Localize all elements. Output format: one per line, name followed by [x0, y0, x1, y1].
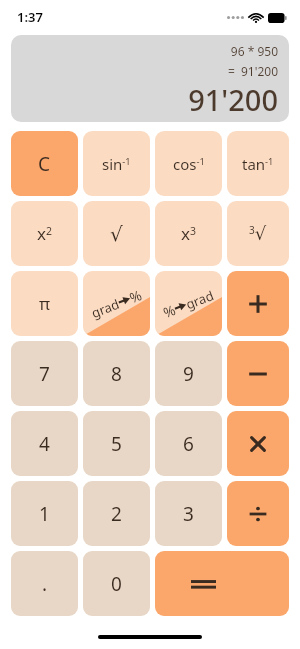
staticText: 5 — [111, 431, 122, 457]
button[interactable]: π — [11, 271, 78, 336]
button[interactable]: . — [11, 551, 78, 616]
button[interactable]: 5 — [83, 411, 150, 476]
button[interactable]: 0 — [83, 551, 150, 616]
button[interactable]: 3√ — [227, 201, 289, 266]
button[interactable]: tan-1 — [227, 131, 289, 196]
button[interactable]: 6 — [155, 411, 222, 476]
staticText: C — [38, 151, 51, 177]
staticText: 4 — [39, 431, 50, 457]
button[interactable]: cos-1 — [155, 131, 222, 196]
staticText: 2 — [111, 501, 122, 527]
staticText: 9 — [183, 361, 194, 387]
staticText: cos-1 — [173, 154, 205, 174]
staticText: % — [160, 300, 178, 322]
button[interactable]: 4 — [11, 411, 78, 476]
button[interactable]: x2 — [11, 201, 78, 266]
button[interactable]: Minus — [227, 341, 289, 406]
button[interactable]: 9 — [155, 341, 222, 406]
button[interactable]: x3 — [155, 201, 222, 266]
button[interactable]: Multiply — [227, 411, 289, 476]
button[interactable]: C — [11, 131, 78, 196]
button[interactable]: √ — [83, 201, 150, 266]
button[interactable]: Grad to percent — [83, 271, 150, 336]
staticText: 7 — [39, 361, 50, 387]
staticText: 0 — [111, 571, 122, 597]
staticText: % — [127, 285, 145, 307]
button[interactable]: Percent to grad — [155, 271, 222, 336]
staticText: π — [39, 292, 51, 315]
button[interactable]: 3 — [155, 481, 222, 546]
button[interactable]: Equals — [155, 551, 289, 616]
staticText: 96 * 950 — [230, 43, 278, 59]
staticText: 6 — [183, 431, 194, 457]
button[interactable]: 2 — [83, 481, 150, 546]
button[interactable]: sin-1 — [83, 131, 150, 196]
button[interactable]: Divide — [227, 481, 289, 546]
staticText: x2 — [37, 222, 53, 245]
button[interactable]: 7 — [11, 341, 78, 406]
staticText: x3 — [181, 222, 197, 245]
button[interactable]: 8 — [83, 341, 150, 406]
staticText: 91'200 — [188, 80, 278, 119]
staticText: 1:37 — [17, 8, 43, 26]
button[interactable]: 1 — [11, 481, 78, 546]
staticText: grad — [183, 286, 217, 313]
button[interactable]: Plus — [227, 271, 289, 336]
staticText: 3 — [183, 501, 194, 527]
staticText: grad — [89, 295, 122, 322]
staticText: . — [42, 571, 48, 597]
staticText: 8 — [111, 361, 122, 387]
staticText: 3√ — [249, 223, 267, 244]
staticText: sin-1 — [102, 154, 131, 174]
staticText: tan-1 — [242, 154, 274, 174]
staticText: 1 — [39, 501, 50, 527]
staticText: = 91'200 — [227, 63, 278, 79]
staticText: √ — [110, 222, 123, 245]
